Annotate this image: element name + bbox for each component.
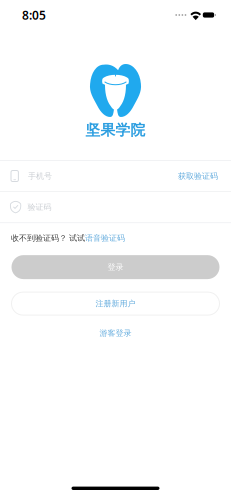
staticText: 收不到验证码？ 试试 xyxy=(11,233,85,243)
staticText: 获取验证码 xyxy=(178,171,218,181)
button[interactable]: 注册新用户 xyxy=(11,292,219,315)
button[interactable]: 游客登录 xyxy=(99,328,131,338)
staticText: 8:05 xyxy=(22,7,46,23)
staticText: 游客登录 xyxy=(99,328,131,338)
staticText: 注册新用户 xyxy=(95,299,135,308)
staticText: 登录 xyxy=(107,262,123,272)
staticText: 验证码 xyxy=(27,202,51,212)
staticText: 手机号 xyxy=(28,171,52,181)
button[interactable]: 登录 xyxy=(11,255,219,279)
button[interactable]: 语音验证码 xyxy=(85,233,125,243)
staticText: 语音验证码 xyxy=(85,233,125,243)
staticText: 坚果学院 xyxy=(85,121,145,139)
button[interactable]: 获取验证码 xyxy=(168,163,218,189)
